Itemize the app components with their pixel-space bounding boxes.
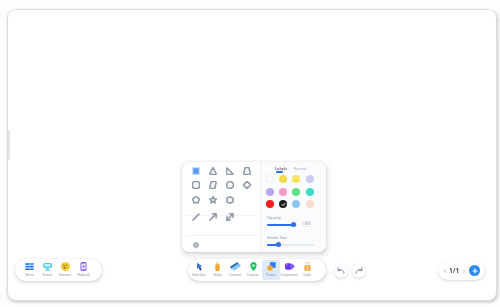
staticText: Connect: [229, 273, 242, 277]
button[interactable]: [224, 211, 235, 222]
button[interactable]: [207, 211, 218, 222]
staticText: Screen: [42, 273, 53, 277]
staticText: Opacity: [267, 215, 281, 220]
button[interactable]: [190, 194, 201, 205]
staticText: Labels: [275, 166, 288, 171]
staticText: Stroke Size: [267, 235, 287, 240]
button[interactable]: [292, 200, 300, 208]
button[interactable]: Add page: [469, 265, 480, 276]
button[interactable]: [266, 188, 274, 196]
button[interactable]: Interact: [56, 260, 74, 280]
staticText: Code: [303, 273, 311, 277]
button[interactable]: Frame: [262, 260, 280, 280]
button[interactable]: Components: [280, 260, 298, 280]
button[interactable]: [190, 179, 201, 190]
button[interactable]: [207, 194, 218, 205]
button[interactable]: [267, 241, 314, 248]
button[interactable]: [279, 200, 287, 208]
button[interactable]: Previous page: [442, 268, 448, 274]
button[interactable]: [267, 221, 298, 228]
staticText: Flipbook: [77, 273, 90, 277]
staticText: 100%: [303, 222, 311, 226]
staticText: Interact: [59, 273, 71, 277]
button[interactable]: [207, 179, 218, 190]
button[interactable]: [279, 188, 287, 196]
button[interactable]: Selection: [190, 260, 208, 280]
button[interactable]: [241, 179, 252, 190]
staticText: Frame: [266, 273, 276, 277]
button[interactable]: [224, 194, 235, 205]
button[interactable]: [292, 188, 300, 196]
button[interactable]: [207, 165, 218, 176]
button[interactable]: Redo: [352, 264, 366, 278]
button[interactable]: Focuser: [244, 260, 262, 280]
button[interactable]: [306, 175, 314, 183]
button[interactable]: Code: [298, 260, 316, 280]
button[interactable]: [224, 179, 235, 190]
button[interactable]: Connect: [226, 260, 244, 280]
button[interactable]: [224, 165, 235, 176]
button[interactable]: [190, 165, 201, 176]
button[interactable]: Screen: [38, 260, 56, 280]
staticText: Selection: [192, 273, 206, 277]
button[interactable]: [279, 175, 287, 183]
button[interactable]: Menu: [20, 260, 38, 280]
button[interactable]: [266, 175, 274, 183]
button[interactable]: [241, 165, 252, 176]
button[interactable]: Flipbook: [74, 260, 92, 280]
button[interactable]: Recent: [294, 166, 307, 171]
staticText: 1/1: [449, 266, 460, 275]
staticText: Focuser: [247, 273, 259, 277]
staticText: Menu: [25, 273, 34, 277]
staticText: Components: [280, 273, 298, 277]
staticText: Sticky: [213, 273, 222, 277]
button[interactable]: [292, 175, 300, 183]
button[interactable]: Sticky: [208, 260, 226, 280]
button[interactable]: [190, 211, 201, 222]
button[interactable]: Labels: [275, 166, 288, 171]
button[interactable]: [190, 239, 201, 250]
button[interactable]: Next page: [461, 268, 467, 274]
staticText: Recent: [294, 166, 307, 171]
button[interactable]: [266, 200, 274, 208]
button[interactable]: [306, 188, 314, 196]
button[interactable]: [306, 200, 314, 208]
button[interactable]: Undo: [334, 264, 348, 278]
